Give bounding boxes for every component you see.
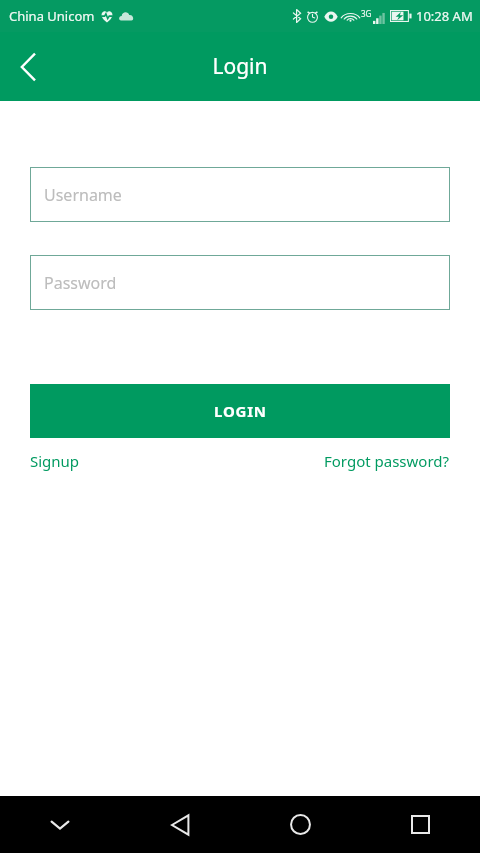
button[interactable]: Hide keyboard [0, 796, 120, 853]
button[interactable]: Back [120, 796, 240, 853]
staticText: Forgot password? [324, 451, 450, 471]
button[interactable]: Username [30, 167, 450, 222]
staticText: Signup [30, 451, 80, 471]
button[interactable]: Signup [30, 451, 80, 471]
button[interactable]: Recents [360, 796, 480, 853]
staticText: Login [0, 52, 480, 81]
staticText: 10:28 AM [416, 7, 473, 25]
button[interactable]: Password [30, 255, 450, 310]
button[interactable]: Forgot password? [324, 451, 450, 471]
button[interactable]: Home [240, 796, 360, 853]
staticText: Password [44, 272, 117, 294]
button[interactable]: LOGIN [30, 384, 450, 438]
staticText: Username [44, 184, 122, 206]
staticText: China Unicom [9, 7, 95, 25]
button[interactable]: Back [0, 39, 56, 95]
staticText: LOGIN [214, 401, 267, 421]
staticText: 3G [361, 8, 372, 19]
